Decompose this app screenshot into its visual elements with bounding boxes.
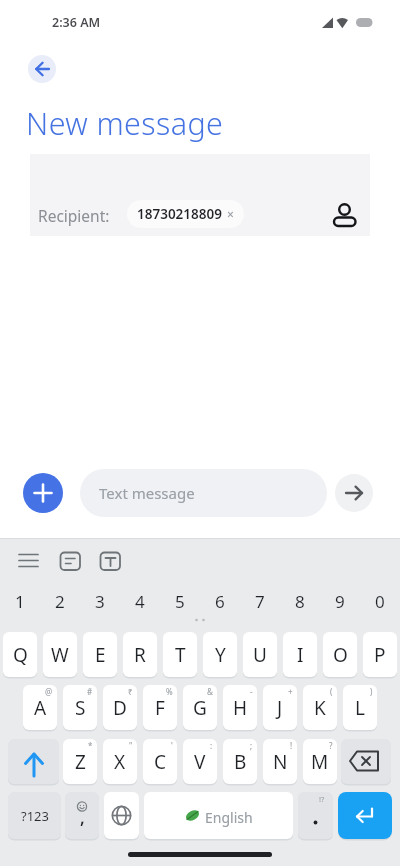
staticText: X (114, 749, 126, 775)
staticText: 18730218809 (137, 205, 222, 223)
button[interactable]: N (263, 739, 297, 784)
button[interactable]: W (43, 632, 77, 677)
button[interactable]: Text message (80, 469, 327, 517)
button[interactable]: T (163, 632, 197, 677)
button[interactable] (12, 545, 46, 575)
button[interactable] (328, 196, 362, 230)
staticText: B (234, 749, 247, 775)
staticText: T (175, 642, 186, 668)
staticText: L (355, 695, 365, 721)
button[interactable]: 9 (320, 583, 360, 619)
staticText: N (273, 749, 288, 775)
button[interactable]: F (143, 685, 177, 730)
staticText: Q (13, 642, 28, 668)
button[interactable]: R (123, 632, 157, 677)
staticText: ?123 (21, 807, 49, 825)
staticText: ₹ (128, 686, 133, 697)
button[interactable]: K (303, 685, 337, 730)
staticText: I (297, 642, 304, 668)
button[interactable]: 7 (240, 583, 280, 619)
button[interactable] (28, 55, 56, 83)
button[interactable]: J (263, 685, 297, 730)
staticText: V (194, 749, 206, 775)
button[interactable] (341, 739, 391, 784)
staticText: D (113, 695, 127, 721)
button[interactable]: Q (3, 632, 37, 677)
staticText: ' (171, 740, 173, 751)
staticText: Z (75, 749, 86, 775)
button[interactable] (8, 739, 59, 784)
staticText: A (34, 695, 47, 721)
staticText: & (207, 686, 213, 697)
staticText: : (210, 740, 213, 751)
button[interactable]: 3 (80, 583, 120, 619)
button[interactable] (298, 792, 333, 839)
button[interactable]: O (323, 632, 357, 677)
staticText: # (87, 686, 93, 697)
staticText: ! (290, 740, 293, 751)
button[interactable]: 8 (280, 583, 320, 619)
staticText: 8 (295, 590, 305, 613)
button[interactable]: B (223, 739, 257, 784)
button[interactable]: Z (63, 739, 97, 784)
button[interactable]: P (363, 632, 397, 677)
button[interactable]: E (83, 632, 117, 677)
button[interactable]: 1 (0, 583, 40, 619)
button[interactable]: A (23, 685, 57, 730)
button[interactable] (144, 792, 293, 839)
staticText: * (88, 740, 93, 751)
staticText: 1 (15, 590, 25, 613)
staticText: 7 (255, 590, 265, 613)
staticText: + (288, 686, 293, 697)
staticText: 6 (215, 590, 225, 613)
staticText: " (129, 740, 133, 751)
staticText: C (154, 749, 167, 775)
button[interactable]: Y (203, 632, 237, 677)
staticText: G (193, 695, 207, 721)
button[interactable]: V (183, 739, 217, 784)
staticText: 9 (335, 590, 345, 613)
staticText: 2 (55, 590, 65, 613)
button[interactable] (23, 473, 63, 513)
staticText: M (311, 749, 329, 775)
staticText: 5 (175, 590, 185, 613)
button[interactable]: 5 (160, 583, 200, 619)
button[interactable]: S (63, 685, 97, 730)
staticText: ; (250, 740, 253, 751)
staticText: × (227, 206, 234, 222)
button[interactable] (65, 792, 99, 839)
button[interactable]: M (303, 739, 337, 784)
button[interactable]: 6 (200, 583, 240, 619)
button[interactable] (335, 474, 373, 512)
staticText: ( (330, 686, 333, 697)
staticText: J (277, 695, 283, 721)
button[interactable]: G (183, 685, 217, 730)
staticText: % (166, 686, 173, 697)
button[interactable] (338, 792, 392, 839)
button[interactable]: H (223, 685, 257, 730)
button[interactable] (94, 545, 128, 575)
button[interactable]: 2 (40, 583, 80, 619)
staticText: 2:36 AM (52, 14, 101, 31)
button[interactable]: 4 (120, 583, 160, 619)
button[interactable]: X (103, 739, 137, 784)
button[interactable]: I (283, 632, 317, 677)
button[interactable]: C (143, 739, 177, 784)
button[interactable] (104, 792, 139, 839)
button[interactable]: 0 (360, 583, 400, 619)
button[interactable]: ?123 (8, 792, 61, 839)
staticText: 3 (95, 590, 105, 613)
button[interactable]: D (103, 685, 137, 730)
button[interactable] (54, 545, 88, 575)
button[interactable]: 18730218809 (127, 200, 244, 228)
staticText: R (134, 642, 146, 668)
staticText: H (233, 695, 248, 721)
staticText: Recipient: (38, 205, 110, 226)
button[interactable]: U (243, 632, 277, 677)
staticText: !? (319, 794, 325, 804)
button[interactable]: L (343, 685, 377, 730)
staticText: E (95, 642, 106, 668)
staticText: 4 (135, 590, 145, 613)
staticText: Y (215, 642, 226, 668)
staticText: Text message (99, 483, 195, 503)
